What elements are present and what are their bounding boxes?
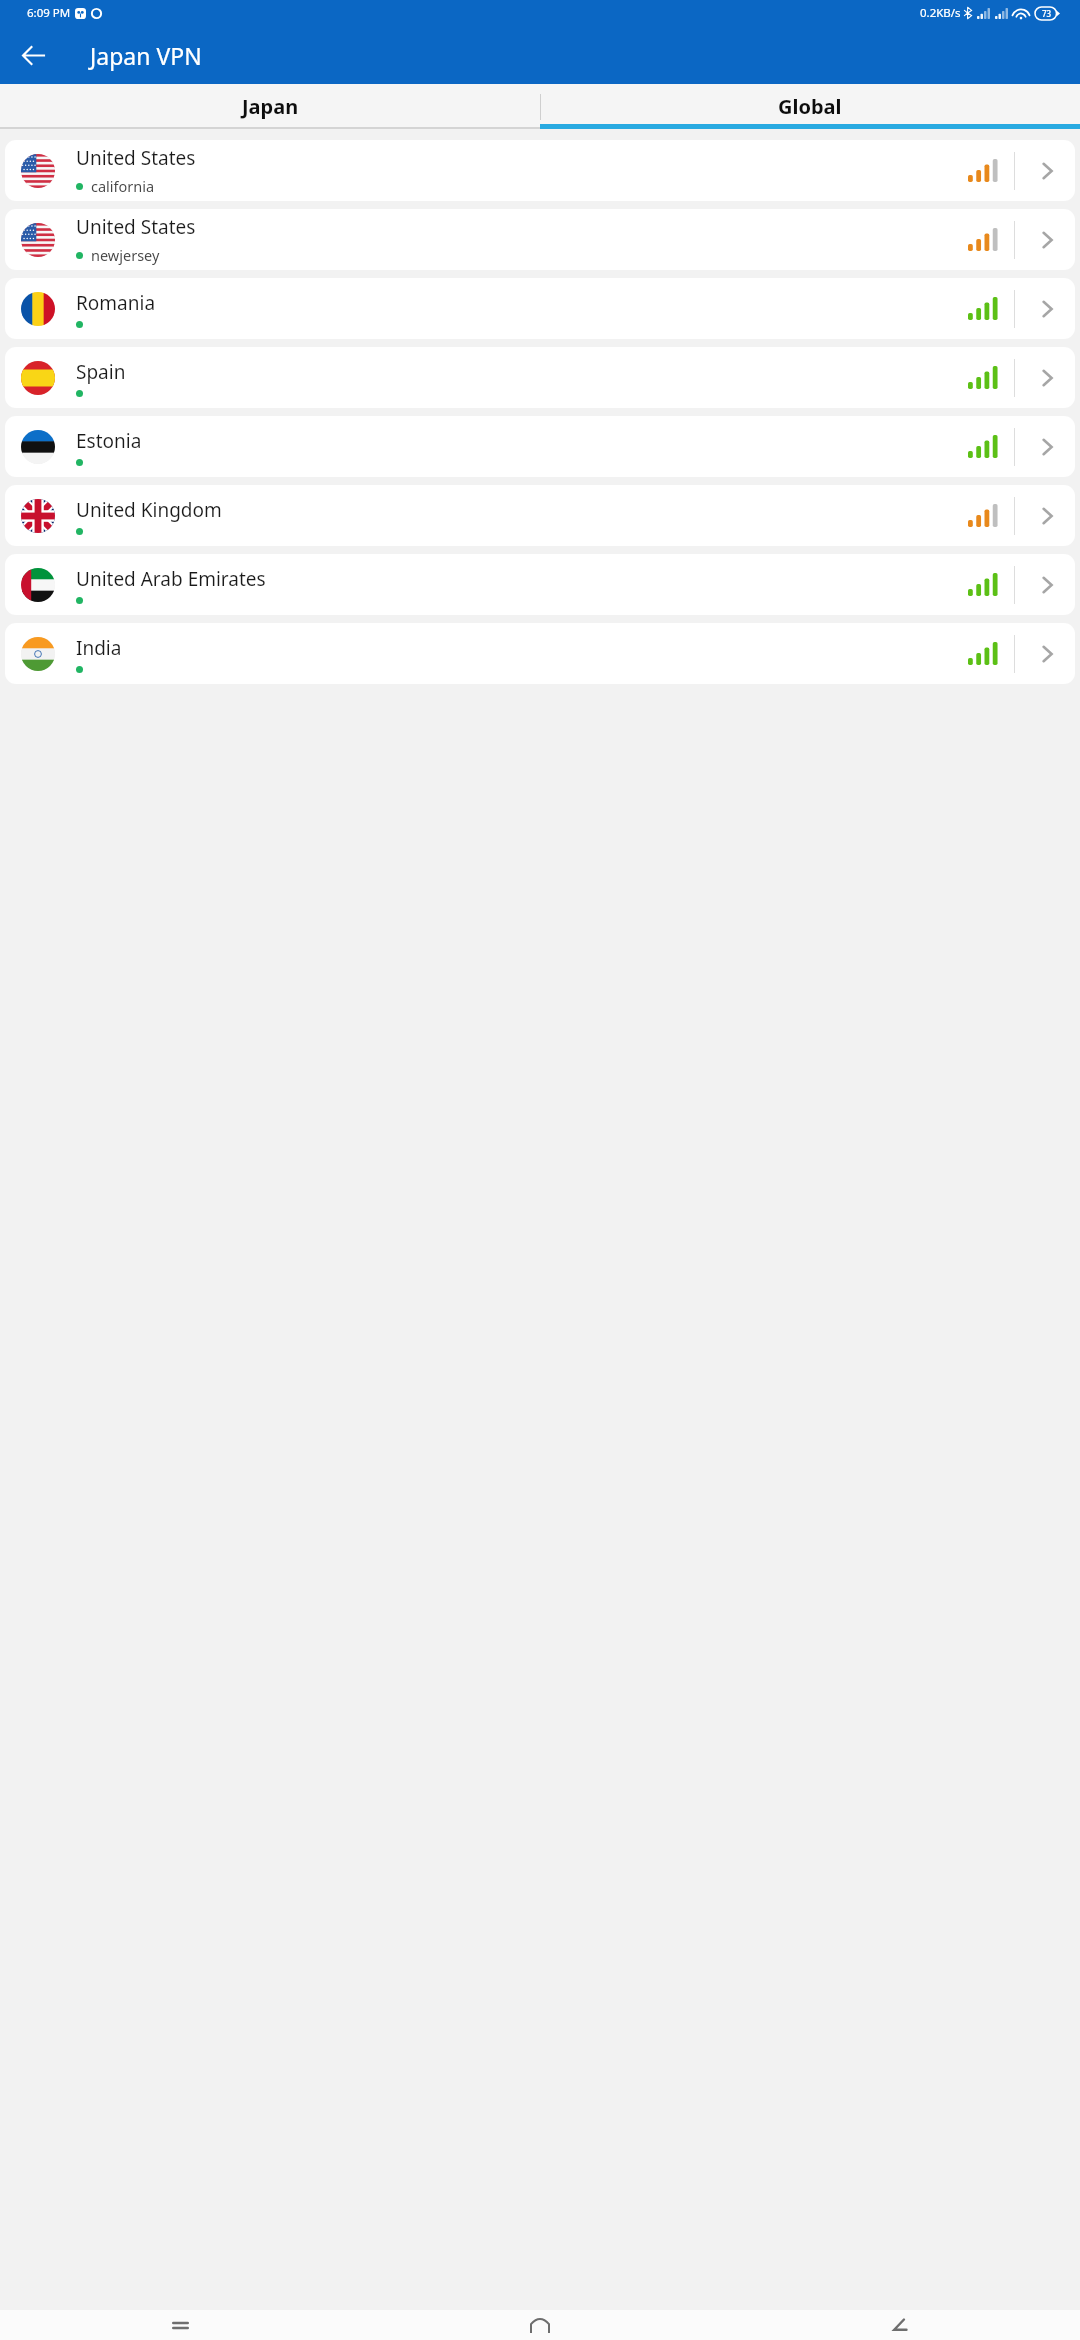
staticText: 6:09 PM (27, 5, 71, 21)
button[interactable]: Recents (0, 2310, 360, 2340)
staticText: United Arab Emirates (76, 566, 266, 592)
staticText: Estonia (76, 428, 142, 454)
button[interactable]: India (5, 623, 1075, 684)
button[interactable]: Open United Kingdom (1029, 498, 1065, 534)
button[interactable]: Japan (0, 84, 540, 129)
staticText: newjersey (91, 245, 160, 265)
button[interactable]: United Kingdom (5, 485, 1075, 546)
button[interactable]: Open India (1029, 636, 1065, 672)
button[interactable]: Back (9, 31, 57, 79)
staticText: United Kingdom (76, 497, 222, 523)
staticText: Global (778, 93, 842, 120)
staticText: 73 (1042, 8, 1052, 19)
staticText: 0.2KB/s (920, 5, 961, 21)
button[interactable]: United States (5, 140, 1075, 201)
button[interactable]: Open Estonia (1029, 429, 1065, 465)
button[interactable]: Home (360, 2310, 720, 2340)
staticText: Spain (76, 359, 126, 385)
button[interactable]: Open United States (1029, 153, 1065, 189)
button[interactable]: Back (720, 2310, 1080, 2340)
button[interactable]: Global (540, 84, 1080, 129)
button[interactable]: Open Romania (1029, 291, 1065, 327)
button[interactable]: United States (5, 209, 1075, 270)
staticText: Japan VPN (90, 40, 202, 71)
button[interactable]: Romania (5, 278, 1075, 339)
button[interactable]: Estonia (5, 416, 1075, 477)
staticText: United States (76, 145, 196, 171)
button[interactable]: United Arab Emirates (5, 554, 1075, 615)
button[interactable]: Spain (5, 347, 1075, 408)
staticText: california (91, 176, 155, 196)
staticText: Romania (76, 290, 156, 316)
button[interactable]: Open Spain (1029, 360, 1065, 396)
staticText: Japan (242, 93, 299, 120)
staticText: United States (76, 214, 196, 240)
button[interactable]: Open United States (1029, 222, 1065, 258)
staticText: India (76, 635, 122, 661)
button[interactable]: Open United Arab Emirates (1029, 567, 1065, 603)
